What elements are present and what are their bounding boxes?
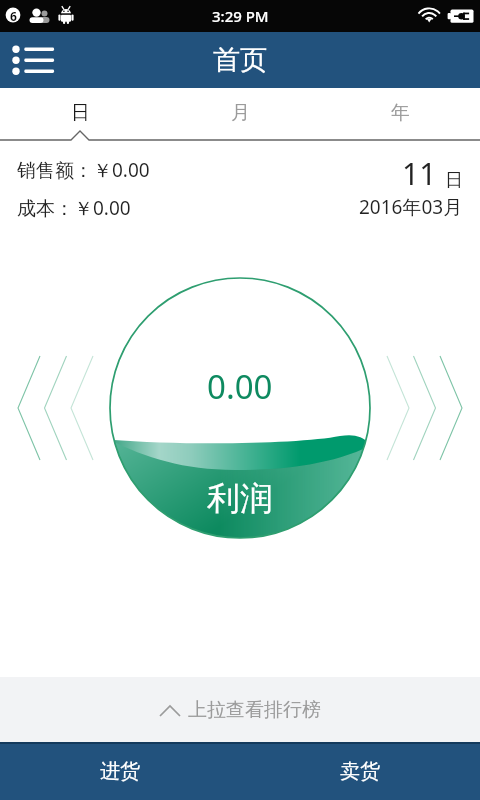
staticText: 年: [391, 101, 410, 125]
button[interactable]: Menu: [0, 32, 68, 88]
staticText: 3:29 PM: [212, 6, 269, 26]
staticText: 进货: [100, 759, 140, 784]
button[interactable]: 日: [0, 88, 160, 137]
button[interactable]: 年: [320, 88, 480, 137]
staticText: 0.00: [207, 364, 273, 409]
staticText: 月: [231, 101, 250, 125]
button[interactable]: 月: [160, 88, 320, 137]
staticText: 利润: [207, 478, 273, 520]
staticText: 6: [10, 8, 17, 23]
button[interactable]: 上拉查看排行榜: [0, 677, 480, 742]
staticText: 日: [71, 101, 90, 125]
button[interactable]: 进货: [0, 742, 240, 800]
button[interactable]: 卖货: [240, 742, 480, 800]
staticText: 成本：￥0.00: [17, 195, 131, 221]
staticText: 销售额：￥0.00: [17, 157, 150, 183]
staticText: 11: [402, 153, 437, 194]
staticText: 2016年03月: [359, 194, 463, 220]
staticText: 日: [445, 169, 463, 192]
staticText: 首页: [213, 43, 267, 77]
staticText: 卖货: [340, 759, 380, 784]
staticText: 上拉查看排行榜: [188, 698, 321, 722]
